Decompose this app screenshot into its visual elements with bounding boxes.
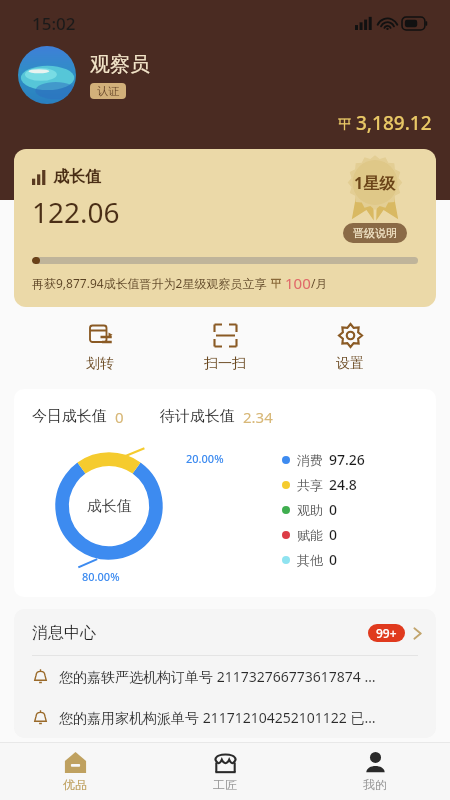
button[interactable]: 扫一扫	[186, 321, 264, 375]
button[interactable]: 我的	[300, 743, 450, 800]
staticText: 122.06	[32, 193, 120, 231]
staticText: 划转	[86, 355, 114, 373]
staticText: 20.00%	[186, 451, 224, 466]
staticText: 观察员	[90, 52, 150, 77]
staticText: 0	[329, 525, 338, 544]
staticText: 再获9,877.94成长值晋升为2星级观察员立享	[32, 275, 270, 291]
staticText: 99+	[376, 625, 397, 641]
button[interactable]: 您的嘉用家机构派单号 211712104252101122 已…	[14, 697, 436, 738]
staticText: 15:02	[32, 12, 76, 35]
button[interactable]	[18, 46, 76, 104]
button[interactable]: 您的嘉轶严选机构订单号 211732766773617874 …	[14, 656, 436, 697]
staticText: 100	[285, 273, 311, 293]
staticText: 消息中心	[32, 623, 96, 643]
staticText: 97.26	[329, 450, 365, 469]
staticText: 观助	[297, 502, 323, 518]
staticText: 认证	[97, 84, 119, 98]
staticText: 我的	[363, 777, 387, 792]
staticText: 设置	[336, 355, 364, 373]
staticText: 晋级说明	[353, 226, 397, 240]
other: More messages	[413, 626, 422, 641]
staticText: 其他	[297, 552, 323, 568]
staticText: 工匠	[213, 777, 237, 792]
staticText: 消费	[297, 452, 323, 468]
staticText: 24.8	[329, 475, 357, 494]
staticText: 您的嘉轶严选机构订单号 211732766773617874 …	[59, 667, 376, 686]
button[interactable]: 晋级说明	[343, 223, 407, 243]
staticText: 今日成长值	[32, 407, 107, 426]
button[interactable]: 设置	[318, 321, 382, 375]
staticText: 80.00%	[82, 569, 120, 584]
button[interactable]: 认证	[90, 83, 126, 99]
staticText: 您的嘉用家机构派单号 211712104252101122 已…	[59, 708, 376, 727]
staticText: 待计成长值	[160, 407, 235, 426]
staticText: 优品	[63, 777, 87, 792]
staticText: 赋能	[297, 527, 323, 543]
button[interactable]: 优品	[0, 743, 150, 800]
button[interactable]: 划转	[68, 321, 132, 375]
staticText: 成长值	[87, 497, 132, 516]
staticText: 3,189.12	[356, 110, 432, 136]
staticText: 1星级	[354, 172, 396, 194]
button[interactable]: 消息中心	[14, 609, 436, 655]
staticText: 2.34	[243, 407, 273, 427]
staticText: /月	[311, 275, 328, 291]
staticText: 0	[115, 407, 124, 427]
staticText: 0	[329, 550, 338, 569]
staticText: 成长值	[53, 167, 101, 187]
staticText: 共享	[297, 477, 323, 493]
staticText: 扫一扫	[204, 355, 246, 373]
staticText: 0	[329, 500, 338, 519]
button[interactable]: 工匠	[150, 743, 300, 800]
